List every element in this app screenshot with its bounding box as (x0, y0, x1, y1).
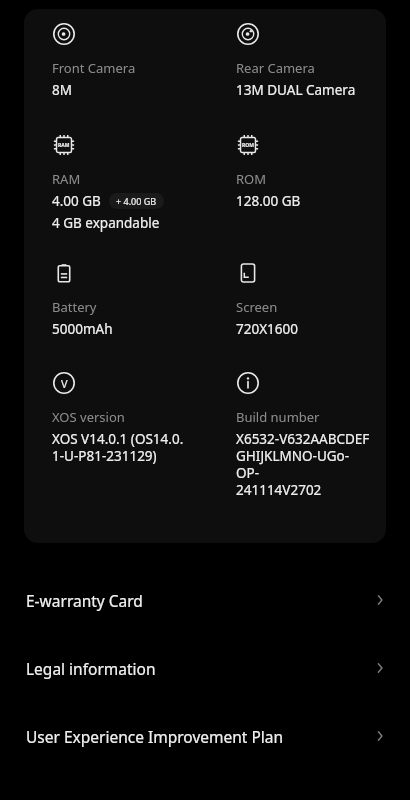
other: Open (372, 592, 388, 608)
staticText: 128.00 GB (236, 192, 301, 210)
staticText: 13M DUAL Camera (236, 81, 356, 99)
other: Open (372, 660, 388, 676)
staticText: RAM (52, 170, 81, 188)
button[interactable]: User Experience Improvement Plan (0, 702, 410, 770)
staticText: XOS version (52, 408, 125, 426)
staticText: X6532-V632AABCDEF GHIJKLMNO-UGo-OP- 2411… (236, 430, 370, 499)
staticText: 5000mAh (52, 320, 113, 338)
staticText: Legal information (26, 658, 372, 679)
staticText: 720X1600 (236, 320, 298, 338)
staticText: RAM (58, 142, 70, 149)
staticText: Screen (236, 298, 278, 316)
staticText: + 4.00 GB (116, 195, 157, 207)
staticText: 4 GB expandable (52, 214, 160, 232)
button[interactable]: E-warranty Card (0, 566, 410, 634)
staticText: E-warranty Card (26, 590, 372, 611)
other: Open (372, 728, 388, 744)
staticText: 8M (52, 81, 72, 99)
staticText: Front Camera (52, 59, 136, 77)
staticText: ROM (242, 142, 254, 149)
staticText: ROM (236, 170, 267, 188)
staticText: Rear Camera (236, 59, 315, 77)
staticText: User Experience Improvement Plan (26, 726, 372, 747)
staticText: Build number (236, 408, 320, 426)
button[interactable]: Legal information (0, 634, 410, 702)
staticText: V (61, 376, 68, 391)
staticText: Battery (52, 298, 97, 316)
staticText: XOS V14.0.1 (OS14.0. 1-U-P81-231129) (52, 430, 202, 465)
staticText: 4.00 GB (52, 192, 101, 210)
